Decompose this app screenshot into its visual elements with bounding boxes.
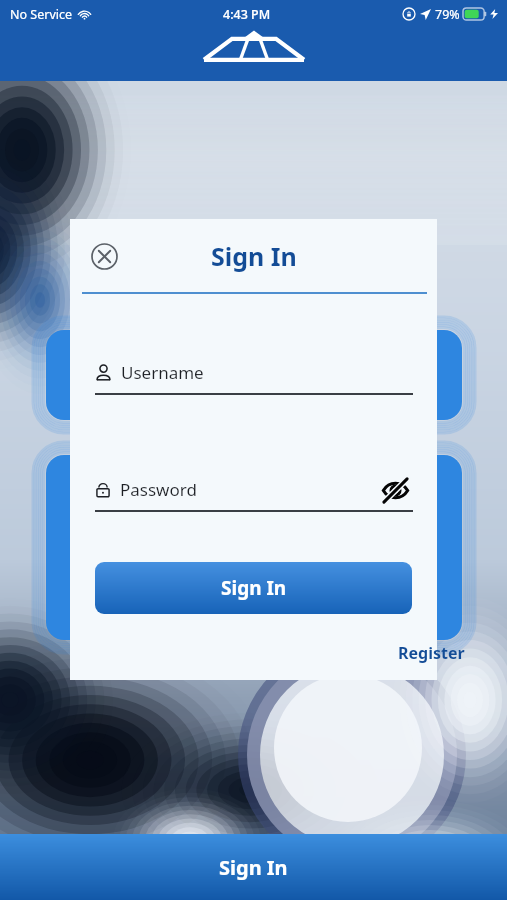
staticText: Sign In xyxy=(221,575,287,601)
button[interactable]: Sign In xyxy=(95,562,412,614)
staticText: 4:43 PM xyxy=(223,6,271,23)
button[interactable]: Show password xyxy=(377,472,413,508)
staticText: Sign In xyxy=(211,239,297,273)
staticText: Password xyxy=(120,478,197,501)
staticText: Sign In xyxy=(219,854,288,881)
staticText: Register xyxy=(398,642,465,664)
button[interactable]: Register xyxy=(400,642,467,664)
button[interactable]: Sign In xyxy=(0,834,507,900)
button[interactable]: Close xyxy=(84,236,124,276)
staticText: Username xyxy=(121,361,204,384)
staticText: No Service xyxy=(10,6,73,23)
staticText: 79% xyxy=(435,6,460,23)
